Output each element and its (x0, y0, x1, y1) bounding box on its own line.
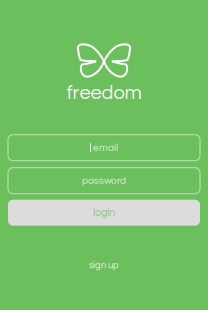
staticText: login (93, 207, 115, 218)
staticText: password (82, 176, 126, 186)
button[interactable]: sign up (89, 261, 119, 270)
staticText: sign up (89, 261, 119, 270)
button[interactable]: password (8, 168, 200, 194)
button[interactable]: login (8, 200, 200, 226)
staticText: freedom (66, 83, 141, 103)
staticText: email (93, 143, 118, 153)
button[interactable]: email (8, 135, 200, 161)
